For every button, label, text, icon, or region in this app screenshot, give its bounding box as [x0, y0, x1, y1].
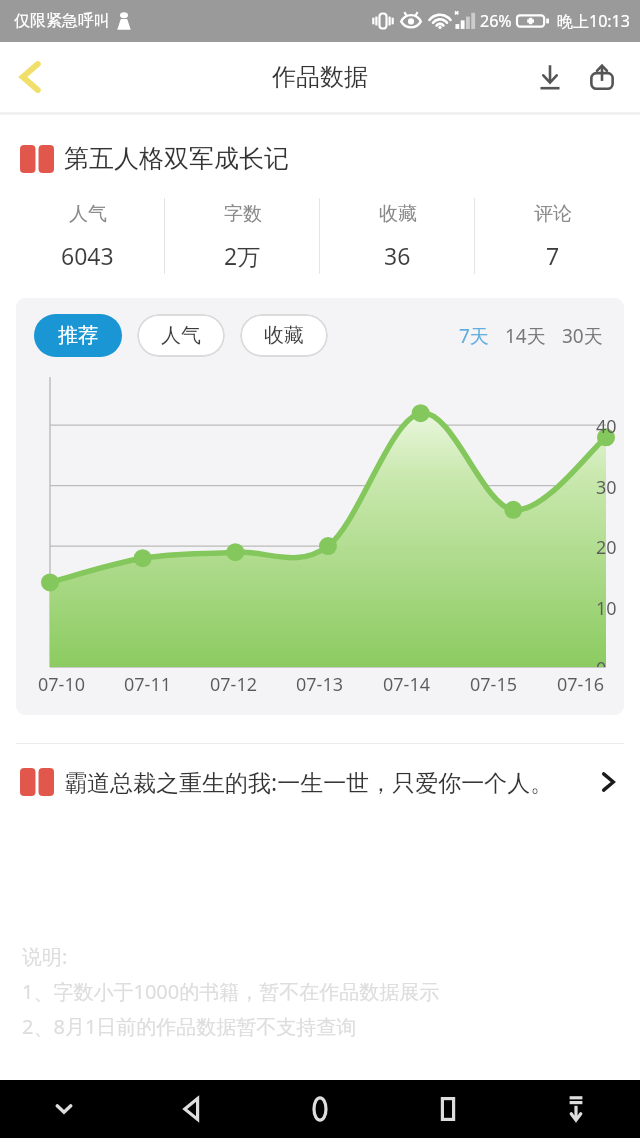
staticText: 人气	[69, 202, 107, 226]
staticText: 6043	[61, 240, 114, 271]
button[interactable]: 收藏	[240, 314, 328, 357]
staticText: 07-14	[383, 672, 430, 697]
staticText: 07-13	[296, 672, 343, 697]
button[interactable]: Download	[524, 51, 576, 103]
button[interactable]: Share	[576, 51, 628, 103]
staticText: 仅限紧急呼叫	[14, 11, 110, 31]
staticText: 晚上10:13	[557, 10, 630, 32]
staticText: 07-10	[38, 672, 85, 697]
staticText: 收藏	[379, 202, 417, 226]
staticText: 评论	[534, 202, 572, 226]
staticText: 10	[596, 596, 624, 621]
button[interactable]: 推荐	[34, 314, 122, 357]
staticText: 推荐	[58, 323, 98, 348]
staticText: 7	[546, 240, 560, 271]
staticText: 07-11	[124, 672, 171, 697]
staticText: 07-15	[470, 672, 517, 697]
staticText: 20	[596, 535, 624, 560]
staticText: 30	[596, 475, 624, 500]
button[interactable]: Recents	[384, 1080, 512, 1138]
staticText: 2万	[224, 240, 261, 271]
staticText: 0	[596, 656, 624, 667]
button[interactable]: 霸道总裁之重生的我:一生一世，只爱你一个人。	[0, 744, 640, 819]
staticText: 40	[596, 414, 624, 439]
staticText: 作品数据	[272, 62, 368, 92]
button[interactable]: 30天	[559, 317, 606, 355]
staticText: 说明:	[22, 943, 68, 970]
staticText: 收藏	[264, 323, 304, 348]
button[interactable]: Hide keyboard	[0, 1080, 128, 1138]
staticText: 07-12	[210, 672, 257, 697]
staticText: 1、字数小于1000的书籍，暂不在作品数据展示	[22, 978, 440, 1005]
staticText: 14天	[505, 323, 546, 349]
staticText: 26%	[480, 10, 512, 32]
button[interactable]: 14天	[502, 317, 549, 355]
staticText: 2、8月1日前的作品数据暂不支持查询	[22, 1013, 357, 1040]
staticText: 霸道总裁之重生的我:一生一世，只爱你一个人。	[64, 766, 590, 797]
staticText: 30天	[562, 323, 603, 349]
staticText: 第五人格双军成长记	[64, 143, 289, 174]
button[interactable]: Back	[0, 46, 62, 108]
staticText: 字数	[224, 202, 262, 226]
staticText: 07-16	[557, 672, 604, 697]
staticText: 7天	[459, 323, 489, 349]
button[interactable]: 第五人格双军成长记	[0, 137, 640, 180]
button[interactable]: 人气	[137, 314, 225, 357]
button[interactable]: Downloads	[512, 1080, 640, 1138]
button[interactable]: Home	[256, 1080, 384, 1138]
staticText: 人气	[161, 323, 201, 348]
button[interactable]: Back	[128, 1080, 256, 1138]
staticText: 36	[384, 240, 411, 271]
button[interactable]: 7天	[456, 317, 492, 355]
